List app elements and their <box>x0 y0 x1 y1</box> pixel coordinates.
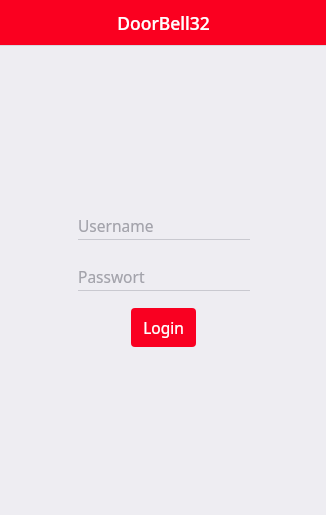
staticText: Passwort <box>78 266 145 287</box>
staticText: Login <box>143 317 184 338</box>
button[interactable]: Login <box>131 308 196 347</box>
staticText: Username <box>78 215 154 236</box>
staticText: DoorBell32 <box>117 11 210 35</box>
button[interactable]: Username <box>78 212 250 239</box>
button[interactable]: Passwort <box>78 263 250 290</box>
